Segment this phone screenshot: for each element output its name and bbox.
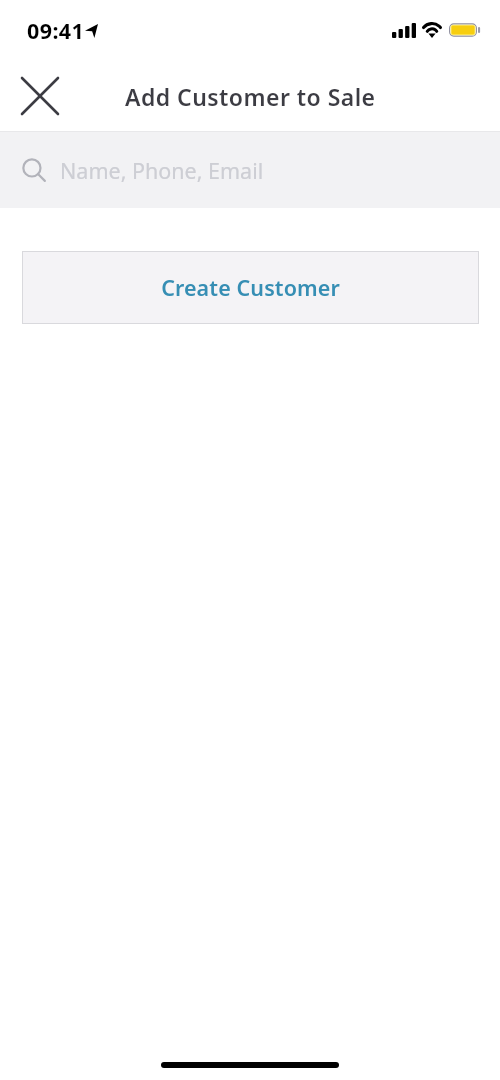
staticText: 09:41	[27, 16, 85, 45]
button[interactable]: Close	[12, 68, 68, 124]
staticText: Name, Phone, Email	[60, 156, 264, 185]
staticText: Create Customer	[161, 273, 340, 302]
staticText: Add Customer to Sale	[125, 81, 376, 112]
button[interactable]: Create Customer	[22, 251, 479, 324]
button[interactable]: Name, Phone, Email	[0, 132, 500, 208]
